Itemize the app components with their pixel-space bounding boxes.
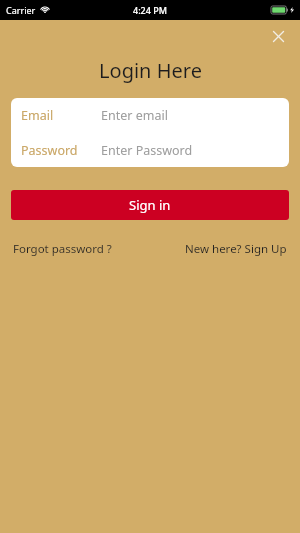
button[interactable]: Forgot password ? (13, 241, 112, 257)
button[interactable]: New here? Sign Up (185, 241, 287, 257)
staticText: Sign in (129, 196, 171, 214)
staticText: Enter Password (101, 142, 193, 159)
staticText: Email (21, 107, 54, 124)
button[interactable]: Close (267, 25, 289, 47)
staticText: Password (21, 142, 78, 159)
button[interactable]: Email (11, 98, 289, 133)
staticText: Forgot password ? (13, 241, 112, 257)
button[interactable]: Sign in (11, 190, 289, 220)
staticText: Enter email (101, 107, 168, 124)
button[interactable]: Password (11, 133, 289, 167)
staticText: Carrier (6, 4, 36, 16)
staticText: New here? Sign Up (185, 241, 287, 257)
staticText: 4:24 PM (133, 4, 167, 16)
staticText: Login Here (99, 57, 202, 84)
